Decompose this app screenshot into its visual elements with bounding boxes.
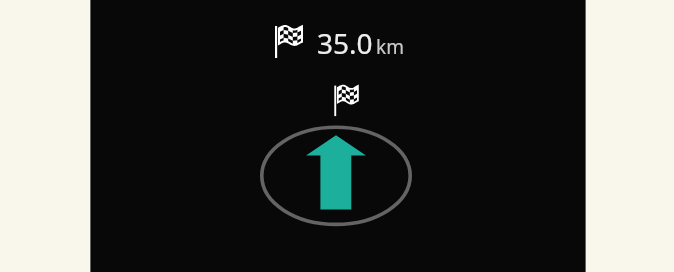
- button[interactable]: Destination: [328, 80, 364, 121]
- staticText: 35.0: [317, 24, 373, 62]
- button[interactable]: 35.0 kilometres to destination: [275, 20, 404, 64]
- button[interactable]: Continue straight ahead: [258, 123, 414, 229]
- staticText: km: [376, 34, 404, 60]
